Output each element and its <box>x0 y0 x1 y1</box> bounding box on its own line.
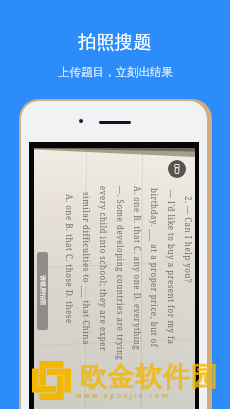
staticText: 上传题目，立刻出结果 <box>58 65 173 79</box>
staticText: A. one B. that C. any one D. everything <box>132 186 143 351</box>
staticText: 请横屏拍照 <box>39 275 47 305</box>
staticText: 拍照搜题 <box>78 31 152 54</box>
staticText: — I'd like to buy a present for my fa <box>166 190 177 345</box>
staticText: www.apoujia.com <box>76 391 171 401</box>
button[interactable]: Flashlight <box>168 160 186 178</box>
staticText: 2. — Can I help you? <box>183 196 194 284</box>
staticText: similar difficulties to ___ that China <box>81 192 92 346</box>
staticText: every child into school; they are exper <box>98 186 109 352</box>
staticText: birthday. ___ at a proper price, but of <box>149 188 160 348</box>
staticText: —. Some developing countries are trying <box>115 186 126 361</box>
button[interactable]: 请横屏拍照 <box>37 252 48 330</box>
staticText: A. one B. that C. those D. these <box>64 194 75 324</box>
staticText: 欧金软件园 <box>79 360 218 394</box>
